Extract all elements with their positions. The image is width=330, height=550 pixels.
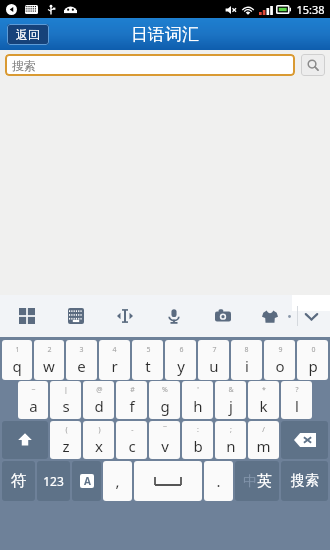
staticText: ) bbox=[98, 425, 101, 435]
button[interactable]: ? bbox=[281, 381, 312, 419]
staticText: ( bbox=[65, 425, 68, 435]
button[interactable]: | bbox=[50, 381, 81, 419]
staticText: ~ bbox=[31, 385, 36, 395]
button[interactable]: Backspace bbox=[281, 421, 328, 459]
button[interactable]: Input method bbox=[72, 461, 101, 501]
staticText: ¯ bbox=[163, 425, 167, 435]
button[interactable]: # bbox=[116, 381, 147, 419]
button[interactable]: & bbox=[215, 381, 246, 419]
staticText: a bbox=[29, 396, 38, 416]
button[interactable]: 7 bbox=[198, 340, 229, 380]
button[interactable]: % bbox=[149, 381, 180, 419]
button[interactable]: 6 bbox=[165, 340, 196, 380]
button[interactable]: 返回 bbox=[7, 24, 49, 45]
button[interactable]: 3 bbox=[66, 340, 97, 380]
staticText: w bbox=[43, 356, 55, 376]
button[interactable]: ( bbox=[50, 421, 81, 459]
staticText: . bbox=[216, 471, 221, 491]
staticText: 15:38 bbox=[296, 2, 325, 17]
button[interactable]: 9 bbox=[264, 340, 295, 380]
staticText: f bbox=[129, 396, 135, 416]
button[interactable]: Keyboard bbox=[63, 303, 89, 329]
staticText: o bbox=[275, 356, 285, 376]
staticText: u bbox=[209, 356, 219, 376]
staticText: s bbox=[62, 396, 70, 416]
staticText: q bbox=[12, 356, 22, 376]
button[interactable]: 2 bbox=[34, 340, 64, 380]
button[interactable]: 4 bbox=[99, 340, 130, 380]
other: Shift bbox=[16, 431, 34, 449]
other: Input method bbox=[80, 474, 94, 488]
staticText: h bbox=[193, 396, 203, 416]
staticText: n bbox=[226, 436, 236, 456]
button[interactable]: Shift bbox=[2, 421, 48, 459]
staticText: / bbox=[262, 425, 265, 435]
other: Backspace bbox=[294, 433, 316, 447]
button[interactable]: 0 bbox=[297, 340, 328, 380]
staticText: m bbox=[256, 436, 271, 456]
staticText: z bbox=[62, 436, 70, 456]
button[interactable]: Voice input bbox=[161, 303, 187, 329]
staticText: 2 bbox=[47, 345, 52, 355]
button[interactable]: Camera input bbox=[210, 303, 236, 329]
button[interactable]: 搜索 bbox=[5, 54, 295, 76]
button[interactable]: 8 bbox=[231, 340, 262, 380]
staticText: i bbox=[245, 356, 249, 376]
staticText: % bbox=[162, 385, 168, 395]
staticText: ? bbox=[295, 385, 299, 395]
staticText: 符 bbox=[11, 471, 27, 491]
staticText: d bbox=[94, 396, 104, 416]
button[interactable]: : bbox=[182, 421, 213, 459]
button[interactable]: / bbox=[248, 421, 279, 459]
button[interactable]: , bbox=[103, 461, 132, 501]
button[interactable]: @ bbox=[83, 381, 114, 419]
staticText: @ bbox=[96, 385, 103, 395]
button[interactable]: - bbox=[116, 421, 147, 459]
button[interactable]: ) bbox=[83, 421, 114, 459]
staticText: 7 bbox=[212, 345, 217, 355]
staticText: ' bbox=[197, 385, 199, 395]
staticText: c bbox=[128, 436, 136, 456]
button[interactable]: ' bbox=[182, 381, 213, 419]
staticText: p bbox=[308, 356, 318, 376]
staticText: k bbox=[259, 396, 268, 416]
staticText: | bbox=[64, 385, 68, 395]
staticText: A bbox=[84, 474, 91, 488]
staticText: 3 bbox=[79, 345, 84, 355]
button[interactable]: 1 bbox=[2, 340, 32, 380]
staticText: l bbox=[295, 396, 299, 416]
staticText: 6 bbox=[179, 345, 184, 355]
button[interactable]: 符 bbox=[2, 461, 35, 501]
button[interactable]: 搜索 bbox=[281, 461, 328, 501]
staticText: 搜索 bbox=[291, 472, 319, 490]
button[interactable]: Move cursor bbox=[112, 303, 138, 329]
staticText: e bbox=[77, 356, 86, 376]
button[interactable]: 123 bbox=[37, 461, 70, 501]
staticText: 返回 bbox=[16, 27, 40, 42]
staticText: 8 bbox=[244, 345, 249, 355]
button[interactable]: ¯ bbox=[149, 421, 180, 459]
button[interactable]: Search bbox=[301, 54, 325, 76]
staticText: 搜索 bbox=[12, 58, 36, 73]
button[interactable]: ; bbox=[215, 421, 246, 459]
staticText: ; bbox=[230, 425, 232, 435]
staticText: r bbox=[111, 356, 118, 376]
staticText: - bbox=[131, 425, 134, 435]
staticText: 英 bbox=[257, 472, 272, 491]
staticText: * bbox=[262, 385, 266, 395]
button[interactable]: Space bbox=[134, 461, 202, 501]
button[interactable]: Hide keyboard bbox=[298, 301, 324, 331]
staticText: 日语词汇 bbox=[131, 24, 199, 45]
button[interactable]: ~ bbox=[18, 381, 48, 419]
button[interactable]: Keyboard layouts bbox=[14, 303, 40, 329]
button[interactable]: * bbox=[248, 381, 279, 419]
staticText: t bbox=[145, 356, 151, 376]
button[interactable]: . bbox=[204, 461, 233, 501]
staticText: , bbox=[115, 471, 120, 491]
staticText: x bbox=[95, 436, 103, 456]
staticText: 4 bbox=[112, 345, 117, 355]
button[interactable]: 5 bbox=[132, 340, 163, 380]
button[interactable]: Themes bbox=[257, 303, 283, 329]
button[interactable]: 中 bbox=[235, 461, 279, 501]
staticText: 中 bbox=[243, 473, 257, 491]
